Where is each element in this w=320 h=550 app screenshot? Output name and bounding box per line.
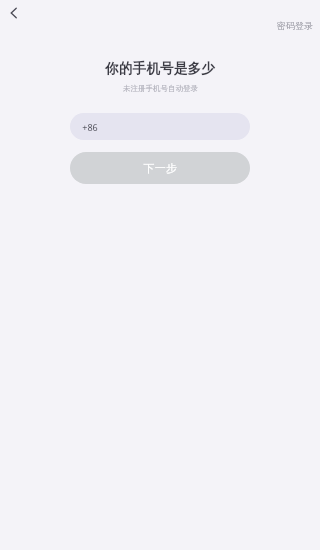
staticText: +86	[82, 121, 98, 133]
button[interactable]: 下一步	[70, 152, 250, 184]
staticText: 密码登录	[277, 20, 313, 31]
staticText: 下一步	[143, 161, 178, 175]
staticText: 你的手机号是多少	[105, 60, 215, 77]
button[interactable]: Back	[0, 0, 28, 26]
staticText: 未注册手机号自动登录	[123, 84, 198, 93]
button[interactable]: 密码登录	[270, 17, 320, 34]
button[interactable]: +86	[70, 113, 250, 140]
